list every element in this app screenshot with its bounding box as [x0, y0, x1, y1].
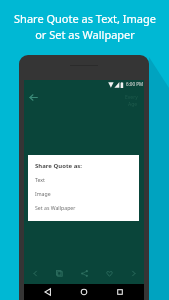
button[interactable]: Next — [129, 269, 138, 278]
button[interactable]: Share — [80, 269, 89, 278]
button[interactable]: Favourite — [105, 269, 114, 278]
staticText: Every — [125, 94, 138, 101]
staticText: Image — [35, 190, 51, 197]
button[interactable]: Recents — [115, 287, 125, 297]
staticText: Share Quote as: — [35, 162, 82, 170]
staticText: Set as Wallpaper — [35, 204, 76, 211]
staticText: Share Quote as Text, Image — [14, 11, 156, 26]
staticText: Age — [128, 101, 138, 108]
button[interactable]: Text — [35, 176, 45, 183]
button[interactable]: Previous — [31, 269, 40, 278]
button[interactable]: Home — [79, 287, 89, 297]
staticText: Text — [35, 176, 45, 183]
button[interactable]: Set as Wallpaper — [35, 204, 76, 211]
staticText: or Set as Wallpaper — [35, 27, 135, 42]
button[interactable]: Back — [28, 92, 39, 103]
staticText: 6:00 PM — [126, 81, 144, 87]
button[interactable]: Copy — [55, 269, 64, 278]
button[interactable]: Image — [35, 190, 51, 197]
button[interactable]: Back — [43, 287, 53, 297]
